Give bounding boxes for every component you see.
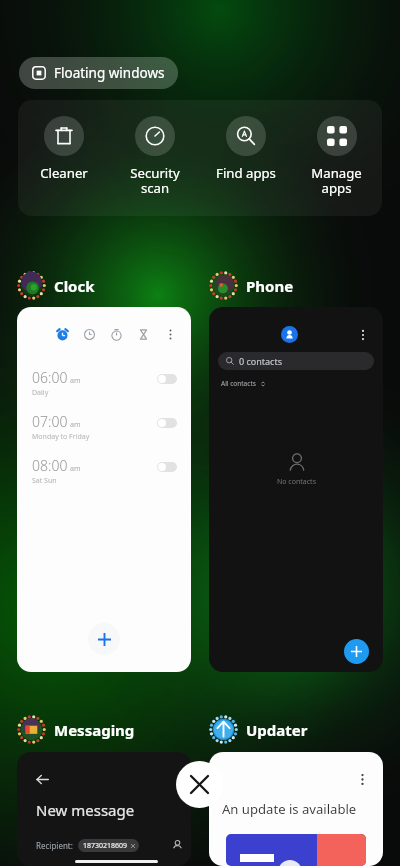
staticText: am bbox=[70, 376, 81, 386]
button[interactable]: World clock bbox=[84, 329, 95, 340]
button[interactable]: Timer bbox=[138, 329, 149, 340]
staticText: 18730218609 bbox=[83, 841, 128, 851]
staticText: Monday to Friday bbox=[32, 432, 90, 442]
button[interactable]: All contacts bbox=[221, 379, 266, 388]
staticText: 07:00 bbox=[32, 412, 68, 431]
button[interactable]: Toggle alarm bbox=[157, 418, 177, 428]
button[interactable]: Add alarm bbox=[88, 623, 120, 655]
button[interactable]: 18730218609 bbox=[78, 839, 139, 852]
staticText: All contacts bbox=[221, 379, 256, 388]
button[interactable]: Contacts bbox=[209, 307, 383, 672]
staticText: Clock bbox=[54, 276, 95, 296]
staticText: Recipient: bbox=[36, 840, 73, 851]
button[interactable]: Alarm bbox=[57, 329, 68, 340]
button[interactable]: More options bbox=[165, 329, 176, 340]
staticText: am bbox=[70, 420, 81, 430]
staticText: Security scan bbox=[130, 164, 180, 197]
staticText: New message bbox=[36, 800, 135, 820]
button[interactable]: More options bbox=[357, 774, 368, 785]
staticText: Phone bbox=[246, 276, 294, 296]
button[interactable]: 06:00 bbox=[17, 368, 191, 398]
button[interactable]: Contacts bbox=[281, 326, 298, 343]
staticText: Updater bbox=[246, 720, 308, 740]
staticText: Floating windows bbox=[54, 64, 165, 82]
button[interactable]: Back bbox=[36, 773, 49, 786]
button[interactable]: 08:00 bbox=[17, 456, 191, 486]
button[interactable]: Floating windows bbox=[19, 57, 178, 89]
button[interactable]: Phone bbox=[209, 271, 294, 300]
staticText: am bbox=[70, 464, 81, 474]
button[interactable]: Updater bbox=[209, 715, 308, 744]
button[interactable]: More options bbox=[357, 329, 369, 341]
staticText: Manage apps bbox=[311, 164, 362, 197]
button[interactable]: Stopwatch bbox=[111, 329, 122, 340]
button[interactable]: Messaging bbox=[17, 715, 135, 744]
staticText: No contacts bbox=[277, 477, 316, 487]
button[interactable]: Close bbox=[176, 761, 223, 808]
staticText: Daily bbox=[32, 388, 49, 398]
button[interactable]: Manage apps bbox=[291, 100, 382, 197]
button[interactable]: More options bbox=[209, 752, 383, 866]
button[interactable]: Toggle alarm bbox=[157, 462, 177, 472]
staticText: Find apps bbox=[216, 164, 276, 182]
button[interactable]: Toggle alarm bbox=[157, 374, 177, 384]
staticText: Cleaner bbox=[40, 164, 88, 182]
button[interactable]: Clock bbox=[17, 271, 95, 300]
staticText: Sat Sun bbox=[32, 476, 57, 486]
button[interactable]: Alarm bbox=[17, 307, 191, 672]
button[interactable]: Back bbox=[17, 752, 191, 866]
button[interactable]: 07:00 bbox=[17, 412, 191, 442]
button[interactable]: 0 contacts bbox=[218, 352, 374, 370]
staticText: 0 contacts bbox=[239, 355, 282, 367]
staticText: Messaging bbox=[54, 720, 135, 740]
button[interactable]: Cleaner bbox=[18, 100, 109, 182]
button[interactable]: New contact bbox=[344, 639, 369, 664]
button[interactable]: Security scan bbox=[109, 100, 200, 197]
button[interactable]: Find apps bbox=[200, 100, 291, 182]
staticText: An update is available bbox=[222, 800, 357, 818]
staticText: 08:00 bbox=[32, 456, 68, 475]
staticText: 06:00 bbox=[32, 368, 68, 387]
button[interactable]: Pick contact bbox=[172, 840, 183, 851]
